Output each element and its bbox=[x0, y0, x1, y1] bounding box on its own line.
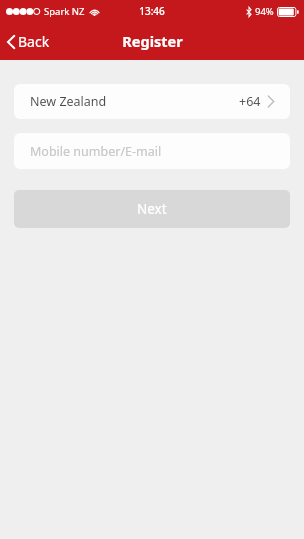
button[interactable]: Mobile number/E-mail bbox=[14, 133, 290, 169]
button[interactable]: Next bbox=[14, 190, 290, 228]
staticText: 94% bbox=[255, 5, 274, 18]
staticText: Back bbox=[18, 32, 50, 51]
staticText: Next bbox=[137, 200, 167, 218]
button[interactable]: New Zealand bbox=[14, 84, 290, 119]
staticText: 13:46 bbox=[139, 4, 165, 18]
staticText: +64 bbox=[239, 93, 261, 110]
staticText: Spark NZ bbox=[44, 5, 85, 18]
staticText: Register bbox=[122, 31, 183, 51]
button[interactable]: Back bbox=[0, 26, 60, 57]
staticText: Mobile number/E-mail bbox=[30, 143, 162, 160]
staticText: New Zealand bbox=[30, 93, 107, 110]
